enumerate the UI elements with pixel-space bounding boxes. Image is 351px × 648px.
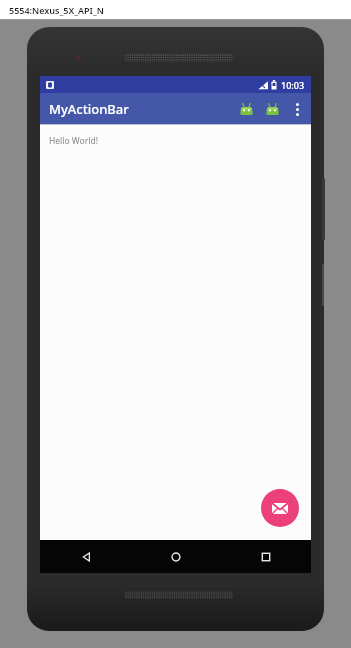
button[interactable]: Home [131,540,221,573]
staticText: MyActionBar [49,100,129,118]
button[interactable]: Compose message [261,489,299,527]
button[interactable]: More options [285,97,309,121]
button[interactable]: Recent apps [221,540,311,573]
staticText: 5554:Nexus_5X_API_N [9,4,104,16]
staticText: 10:03 [281,79,305,91]
button[interactable]: Back [40,540,131,573]
staticText: Hello World! [49,135,98,147]
button[interactable]: Android action two [259,96,285,122]
button[interactable]: Android action one [233,96,259,122]
